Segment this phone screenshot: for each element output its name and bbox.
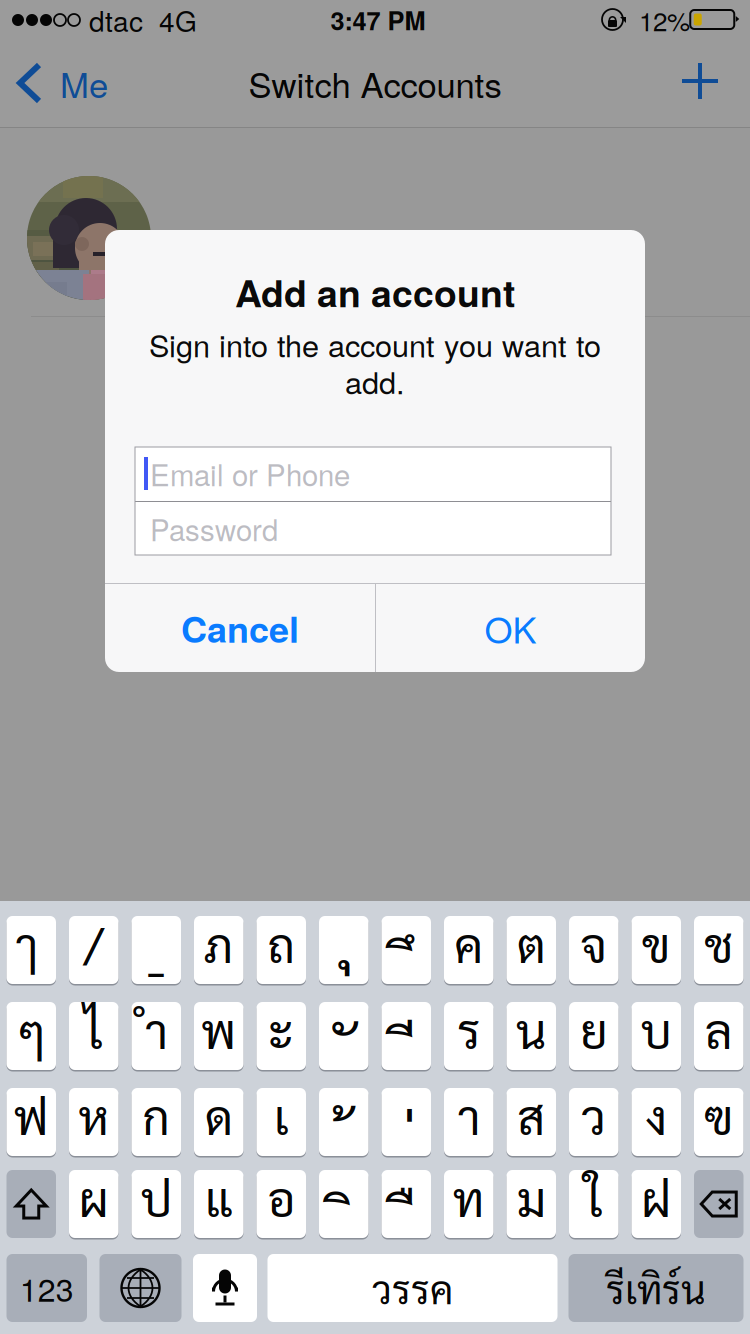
staticText: ต (517, 912, 546, 974)
button[interactable]: _ (131, 916, 181, 986)
button[interactable]: พ (194, 1002, 243, 1072)
button[interactable]: ุ (319, 916, 368, 986)
staticText: จ (580, 912, 607, 974)
button[interactable]: ื (381, 1170, 431, 1240)
staticText: น (516, 998, 547, 1060)
button[interactable]: ึ (381, 916, 431, 986)
button[interactable]: ่ (381, 1088, 431, 1158)
staticText: วรรค (372, 1263, 453, 1313)
staticText: ไ (84, 998, 103, 1060)
staticText: บ (641, 998, 672, 1060)
button[interactable]: า (444, 1088, 493, 1158)
button[interactable]: ้ (319, 1088, 368, 1158)
staticText: ะ (268, 998, 294, 1060)
button[interactable]: ง (631, 1088, 681, 1158)
button[interactable]: อ (256, 1170, 306, 1240)
button[interactable]: ค (444, 916, 493, 986)
staticText: ฟ (14, 1084, 49, 1146)
staticText: 12% (639, 1, 690, 39)
staticText: ภ (204, 912, 234, 974)
staticText: OK (484, 602, 536, 654)
staticText: Me (60, 58, 108, 108)
staticText: ใ (585, 1166, 603, 1228)
button[interactable]: ใ (569, 1170, 618, 1240)
staticText: ำ (145, 998, 168, 1060)
button[interactable]: ั (319, 1002, 368, 1072)
staticText: ข (642, 912, 671, 974)
button[interactable]: OK (376, 584, 645, 672)
staticText: ง (645, 1084, 667, 1146)
staticText: Add an account (235, 265, 515, 319)
button[interactable]: Delete (694, 1170, 743, 1238)
button[interactable]: วรรค (267, 1254, 557, 1322)
button[interactable]: ข (631, 916, 681, 986)
button[interactable]: ภ (194, 916, 243, 986)
staticText: _ (148, 912, 164, 974)
staticText: ด (205, 1084, 233, 1146)
staticText: ี (402, 1014, 416, 1090)
staticText: Cancel (181, 602, 299, 654)
button[interactable]: ร (444, 1002, 493, 1072)
button[interactable]: รีเทิร์น (568, 1254, 743, 1322)
staticText: Email or Phone (150, 452, 350, 494)
button[interactable]: ห (69, 1088, 118, 1158)
button[interactable]: ม (506, 1170, 556, 1240)
button[interactable]: ก (131, 1088, 181, 1158)
button[interactable]: ฃ (694, 1088, 743, 1158)
button[interactable]: เ (256, 1088, 306, 1158)
button[interactable]: ๅ (6, 916, 56, 986)
button[interactable]: น (506, 1002, 556, 1072)
button[interactable]: ว (569, 1088, 618, 1158)
button[interactable]: ผ (69, 1170, 118, 1240)
staticText: ถ (267, 912, 295, 974)
button[interactable]: Next keyboard (99, 1254, 181, 1322)
button[interactable]: ท (444, 1170, 493, 1240)
staticText: รีเทิร์น (606, 1263, 706, 1313)
button[interactable]: แ (194, 1170, 243, 1240)
staticText: ค (454, 912, 483, 974)
staticText: แ (205, 1166, 233, 1228)
button[interactable]: ำ (131, 1002, 181, 1072)
button[interactable]: ด (194, 1088, 243, 1158)
button[interactable]: ไ (69, 1002, 118, 1072)
staticText: 123 (20, 1265, 74, 1311)
button[interactable]: จ (569, 916, 618, 986)
button[interactable]: ๆ (6, 1002, 56, 1072)
staticText: ๆ (16, 998, 46, 1060)
button[interactable]: ส (506, 1088, 556, 1158)
staticText: ่ (402, 1100, 416, 1176)
button[interactable]: ฟ (6, 1088, 56, 1158)
staticText: / (84, 912, 104, 974)
button[interactable]: ช (694, 916, 743, 986)
button[interactable]: ถ (256, 916, 306, 986)
staticText: 4G (159, 0, 197, 40)
staticText: ช (704, 912, 733, 974)
staticText: า (457, 1084, 480, 1146)
button[interactable]: ต (506, 916, 556, 986)
button[interactable]: Cancel (105, 584, 375, 672)
button[interactable]: ฝ (631, 1170, 681, 1240)
staticText: ล (705, 998, 733, 1060)
button[interactable]: Me (0, 41, 180, 125)
button[interactable]: Dictation (193, 1254, 257, 1322)
button[interactable]: ป (131, 1170, 181, 1240)
staticText: Sign into the account you want to (149, 322, 601, 366)
button[interactable]: ี (381, 1002, 431, 1072)
staticText: add. (345, 359, 405, 403)
staticText: Switch Accounts (248, 58, 501, 108)
button[interactable]: ิ (319, 1170, 368, 1240)
button[interactable]: บ (631, 1002, 681, 1072)
staticText: อ (267, 1166, 295, 1228)
button[interactable]: 123 (6, 1254, 87, 1322)
staticText: ว (581, 1084, 606, 1146)
staticText: ย (580, 998, 607, 1060)
button[interactable]: Add account (656, 39, 744, 123)
staticText: เ (274, 1084, 289, 1146)
staticText: ก (142, 1084, 170, 1146)
button[interactable]: Shift (6, 1170, 56, 1238)
button[interactable]: / (69, 916, 118, 986)
button[interactable]: ย (569, 1002, 618, 1072)
staticText: Password (150, 507, 278, 549)
button[interactable]: ล (694, 1002, 743, 1072)
button[interactable]: ะ (256, 1002, 306, 1072)
